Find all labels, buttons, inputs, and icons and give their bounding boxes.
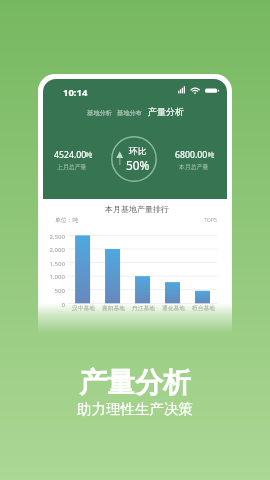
staticText: 0 bbox=[44, 300, 65, 308]
staticText: 基地分析 bbox=[87, 109, 112, 117]
staticText: 环比 bbox=[129, 146, 147, 157]
staticText: 上月总产量 bbox=[57, 163, 87, 170]
staticText: 助力理性生产决策 bbox=[77, 400, 193, 418]
staticText: 桓台基地 bbox=[192, 305, 215, 312]
staticText: 6800.00 bbox=[175, 149, 208, 161]
button[interactable]: 产量分析 bbox=[146, 105, 186, 118]
staticText: 2,000 bbox=[44, 245, 65, 253]
staticText: TOP5 bbox=[204, 216, 217, 223]
staticText: 2,500 bbox=[44, 232, 65, 240]
staticText: 1,000 bbox=[44, 272, 65, 280]
staticText: 吨 bbox=[86, 151, 93, 159]
staticText: 基地分布 bbox=[117, 109, 142, 117]
staticText: 4524.00 bbox=[54, 149, 87, 161]
staticText: 丹江基地 bbox=[132, 305, 155, 312]
staticText: 本月基地产量排行 bbox=[105, 204, 169, 214]
staticText: 汉中基地 bbox=[72, 305, 95, 312]
staticText: 本月总产量 bbox=[179, 163, 209, 170]
staticText: 襄阳基地 bbox=[102, 305, 125, 312]
staticText: 单位：吨 bbox=[55, 216, 79, 223]
button[interactable]: 基地分布 bbox=[115, 107, 144, 119]
staticText: 产量分析 bbox=[148, 106, 184, 117]
staticText: 500 bbox=[44, 286, 65, 294]
staticText: 10:14 bbox=[63, 86, 88, 99]
staticText: 1,500 bbox=[44, 259, 65, 267]
staticText: 产量分析 bbox=[79, 365, 191, 400]
button[interactable]: 基地分析 bbox=[85, 107, 114, 119]
staticText: 通化基地 bbox=[162, 305, 185, 312]
other: Signal, wifi and battery status bbox=[178, 86, 214, 95]
staticText: 50% bbox=[126, 157, 150, 173]
staticText: 吨 bbox=[208, 151, 215, 159]
